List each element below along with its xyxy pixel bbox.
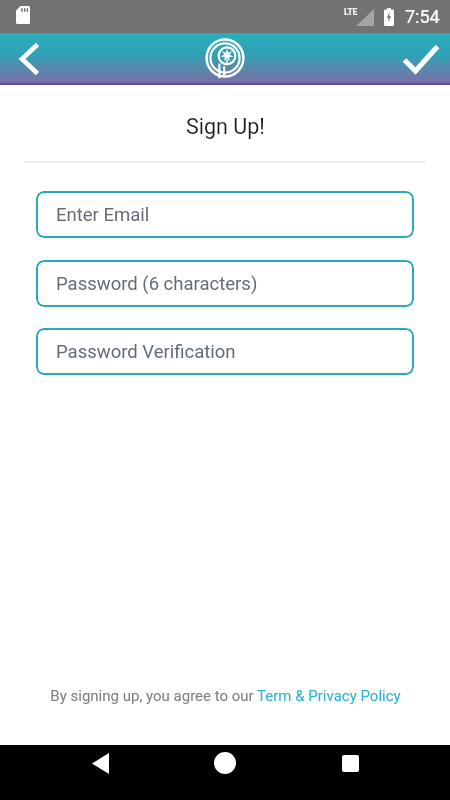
button[interactable]: Password Verification	[36, 328, 414, 375]
staticText: Password (6 characters)	[56, 273, 258, 295]
button[interactable]: Enter Email	[36, 191, 414, 238]
button[interactable]: By signing up, you agree to our Term & P…	[50, 687, 401, 705]
button[interactable]	[400, 38, 442, 80]
staticText: LTE	[344, 7, 357, 17]
button[interactable]: Password (6 characters)	[36, 260, 414, 307]
button[interactable]	[12, 41, 48, 77]
staticText: Password Verification	[56, 341, 236, 363]
staticText: 7:54	[405, 6, 440, 27]
staticText: Enter Email	[56, 204, 150, 226]
button[interactable]	[84, 747, 116, 779]
button[interactable]	[209, 747, 241, 779]
button[interactable]	[334, 747, 366, 779]
staticText: Sign Up!	[186, 114, 265, 139]
